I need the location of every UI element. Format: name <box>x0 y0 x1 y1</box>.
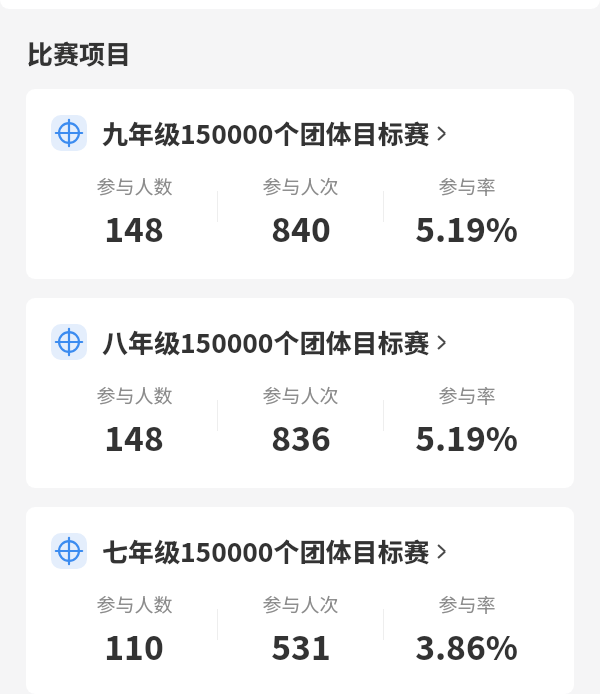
staticText: 七年级150000个团体目标赛 <box>102 532 430 570</box>
staticText: 参与人次 <box>262 590 339 618</box>
staticText: 参与人数 <box>96 590 173 618</box>
other: Competition <box>51 533 87 569</box>
staticText: 参与人数 <box>96 381 173 409</box>
staticText: 840 <box>271 204 331 252</box>
button[interactable]: Competition <box>26 507 574 694</box>
staticText: 5.19% <box>415 413 518 461</box>
staticText: 110 <box>104 622 164 670</box>
staticText: 九年级150000个团体目标赛 <box>102 114 430 152</box>
button[interactable]: Competition <box>26 298 574 488</box>
staticText: 参与率 <box>438 590 496 618</box>
staticText: 836 <box>271 413 331 461</box>
staticText: 参与率 <box>438 172 496 200</box>
staticText: 参与率 <box>438 381 496 409</box>
staticText: 参与人次 <box>262 381 339 409</box>
button[interactable]: Competition <box>26 89 574 279</box>
staticText: 参与人数 <box>96 172 173 200</box>
staticText: 5.19% <box>415 204 518 252</box>
staticText: 531 <box>271 622 331 670</box>
staticText: 参与人次 <box>262 172 339 200</box>
staticText: 148 <box>104 413 164 461</box>
other: Competition <box>51 324 87 360</box>
staticText: 3.86% <box>415 622 518 670</box>
staticText: 148 <box>104 204 164 252</box>
staticText: 八年级150000个团体目标赛 <box>102 323 430 361</box>
other: Competition <box>51 115 87 151</box>
staticText: 比赛项目 <box>27 34 132 72</box>
